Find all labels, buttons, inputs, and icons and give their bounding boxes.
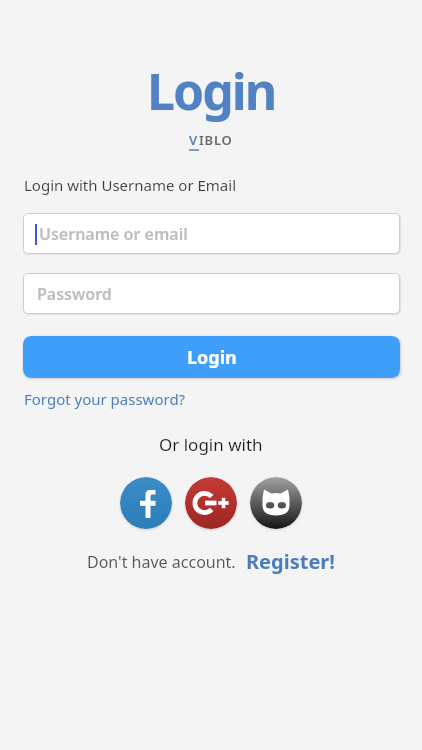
staticText: Forgot your password? <box>24 389 186 409</box>
button[interactable]: Login <box>23 336 400 378</box>
staticText: Register! <box>246 548 335 575</box>
staticText: Login <box>187 345 237 370</box>
staticText: Username or email <box>39 223 188 245</box>
button[interactable] <box>185 477 237 529</box>
button[interactable]: Password <box>23 273 400 314</box>
button[interactable]: Forgot your password? <box>24 389 186 409</box>
button[interactable] <box>250 477 302 529</box>
staticText: Login <box>147 57 276 125</box>
staticText: IBLO <box>199 131 233 149</box>
staticText: V <box>189 131 199 149</box>
staticText: Or login with <box>159 433 263 456</box>
staticText: Password <box>37 283 112 305</box>
button[interactable] <box>120 477 172 529</box>
staticText: Login with Username or Email <box>24 175 237 195</box>
button[interactable]: Register! <box>246 548 335 575</box>
button[interactable]: Username or email <box>23 213 400 254</box>
staticText: Don't have account. <box>87 551 236 573</box>
